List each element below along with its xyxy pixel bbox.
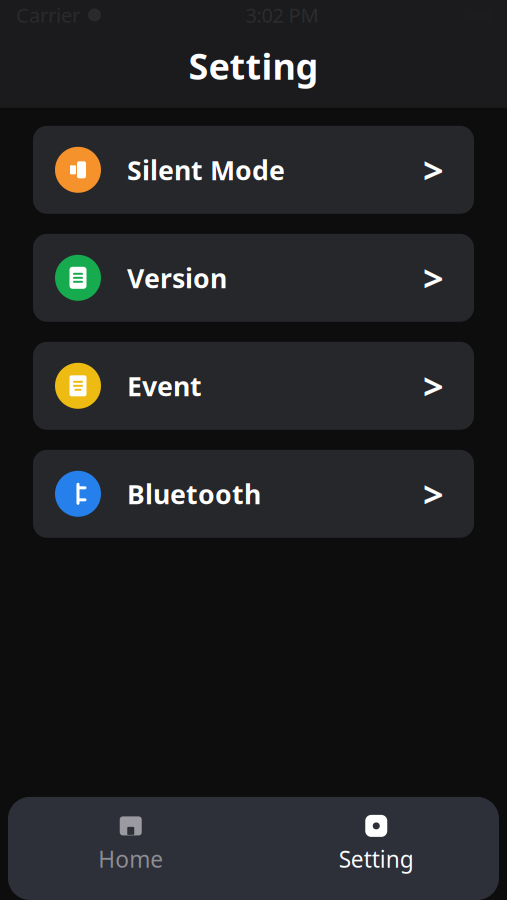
staticText: Bluetooth: [127, 476, 261, 511]
staticText: 3:02 PM: [245, 2, 318, 28]
button[interactable]: Home: [8, 815, 253, 874]
staticText: Home: [98, 844, 163, 874]
button[interactable]: Bluetooth: [33, 450, 474, 538]
staticText: >: [423, 362, 444, 410]
button[interactable]: Setting: [253, 815, 499, 874]
staticText: Silent Mode: [127, 152, 285, 187]
staticText: Setting: [339, 844, 414, 874]
staticText: >: [423, 146, 444, 194]
button[interactable]: Silent Mode: [33, 126, 474, 214]
button[interactable]: Version: [33, 234, 474, 322]
staticText: Event: [127, 368, 202, 403]
staticText: Version: [127, 260, 227, 295]
staticText: >: [423, 254, 444, 302]
staticText: >: [423, 470, 444, 518]
staticText: Carrier: [16, 2, 80, 28]
staticText: Setting: [188, 42, 318, 90]
button[interactable]: Event: [33, 342, 474, 430]
